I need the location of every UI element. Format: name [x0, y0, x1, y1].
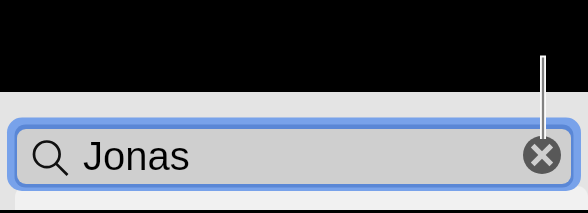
button[interactable]: Clear search: [523, 136, 561, 174]
button[interactable]: Jonas: [7, 117, 581, 191]
staticText: Jonas: [83, 134, 190, 179]
